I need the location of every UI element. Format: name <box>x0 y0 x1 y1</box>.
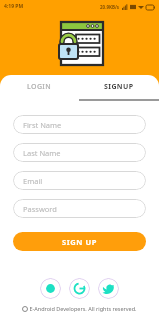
staticText: Last Name <box>23 148 61 158</box>
staticText: Password <box>23 204 57 214</box>
staticText: LOGIN <box>27 82 52 92</box>
button[interactable]: Email <box>13 171 146 190</box>
button[interactable]: SIGN UP <box>13 232 146 251</box>
button[interactable]: Password <box>13 199 146 218</box>
staticText: First Name <box>23 120 62 130</box>
button[interactable]: SIGNUP <box>79 75 159 99</box>
staticText: Email <box>23 176 43 186</box>
staticText: 20.9KB/s <box>100 4 120 10</box>
button[interactable]: First Name <box>13 115 146 134</box>
button[interactable]: Last Name <box>13 143 146 162</box>
staticText: 4:19 PM <box>4 3 24 10</box>
button[interactable]: Sign up with Instagram <box>40 278 61 299</box>
staticText: SIGN UP <box>62 237 98 247</box>
button[interactable]: Sign up with Twitter <box>98 278 119 299</box>
staticText: SIGNUP <box>104 82 134 92</box>
button[interactable]: LOGIN <box>0 75 79 99</box>
staticText: E-Android Developers. All rights reserve… <box>29 305 137 312</box>
button[interactable]: Sign up with Google <box>69 278 90 299</box>
